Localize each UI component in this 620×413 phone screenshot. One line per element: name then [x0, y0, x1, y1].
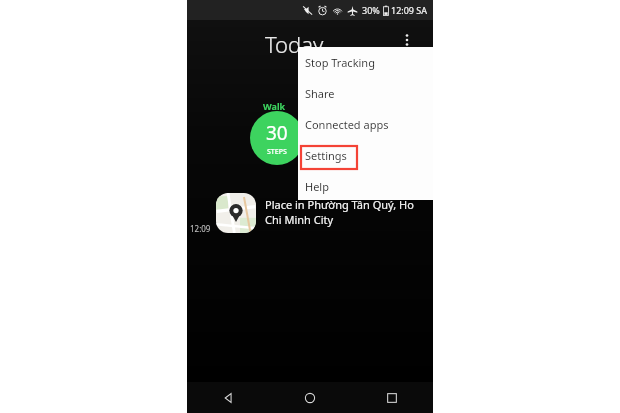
staticText: Help	[305, 179, 329, 194]
staticText: Connected apps	[305, 117, 389, 132]
staticText: STEPS	[267, 147, 287, 157]
staticText: 30%	[362, 4, 380, 16]
button[interactable]: More options	[393, 26, 421, 54]
button[interactable]: Settings	[298, 140, 433, 171]
staticText: Settings	[305, 148, 347, 163]
button[interactable]: 12:09	[187, 192, 433, 244]
button[interactable]: Home	[269, 382, 351, 413]
button[interactable]: 30	[250, 111, 304, 165]
button[interactable]: Help	[298, 171, 433, 202]
button[interactable]: Recent apps	[351, 382, 433, 413]
staticText: 30	[266, 120, 288, 146]
button[interactable]: Back	[187, 382, 269, 413]
staticText: Share	[305, 86, 335, 101]
staticText: Today	[265, 29, 324, 59]
staticText: 12:09	[190, 223, 211, 234]
staticText: Walk	[263, 100, 286, 112]
staticText: Place in Phường Tân Quý, Ho Chi Minh Cit…	[265, 197, 423, 227]
staticText: Stop Tracking	[305, 55, 375, 70]
button[interactable]: Share	[298, 78, 433, 109]
button[interactable]: Stop Tracking	[298, 47, 433, 78]
staticText: 12:09 SA	[391, 4, 428, 16]
button[interactable]: Connected apps	[298, 109, 433, 140]
